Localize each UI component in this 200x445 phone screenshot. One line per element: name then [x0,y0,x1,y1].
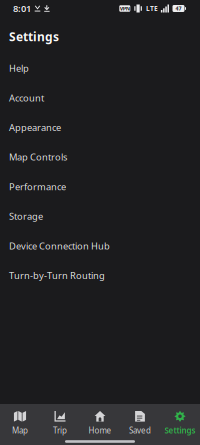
button[interactable]: Trip [40,404,80,438]
staticText: Help [9,62,29,74]
button[interactable]: Settings [160,404,200,438]
button[interactable]: Map [0,404,40,438]
button[interactable]: Appearance [0,113,200,142]
staticText: Settings [164,425,195,436]
staticText: Map [12,425,28,436]
button[interactable]: Saved [120,404,160,438]
staticText: Turn-by-Turn Routing [9,269,105,282]
staticText: 8:01 [13,2,31,15]
button[interactable]: Turn-by-Turn Routing [0,261,200,290]
staticText: Trip [53,425,67,436]
staticText: Account [9,92,44,104]
button[interactable]: Performance [0,172,200,201]
staticText: 47 [175,5,181,12]
staticText: Saved [129,425,151,436]
button[interactable]: Map Controls [0,142,200,172]
button[interactable]: Help [0,53,200,83]
staticText: LTE [146,4,158,13]
button[interactable]: Device Connection Hub [0,231,200,261]
button[interactable]: Account [0,83,200,113]
staticText: Storage [9,210,43,222]
staticText: Settings [9,29,59,45]
staticText: VPN [120,5,130,12]
staticText: Device Connection Hub [9,240,110,252]
button[interactable]: Storage [0,201,200,231]
staticText: Map Controls [9,151,67,163]
staticText: Home [88,425,111,436]
staticText: Appearance [9,121,61,134]
button[interactable]: Home [80,404,120,438]
staticText: Performance [9,180,66,193]
